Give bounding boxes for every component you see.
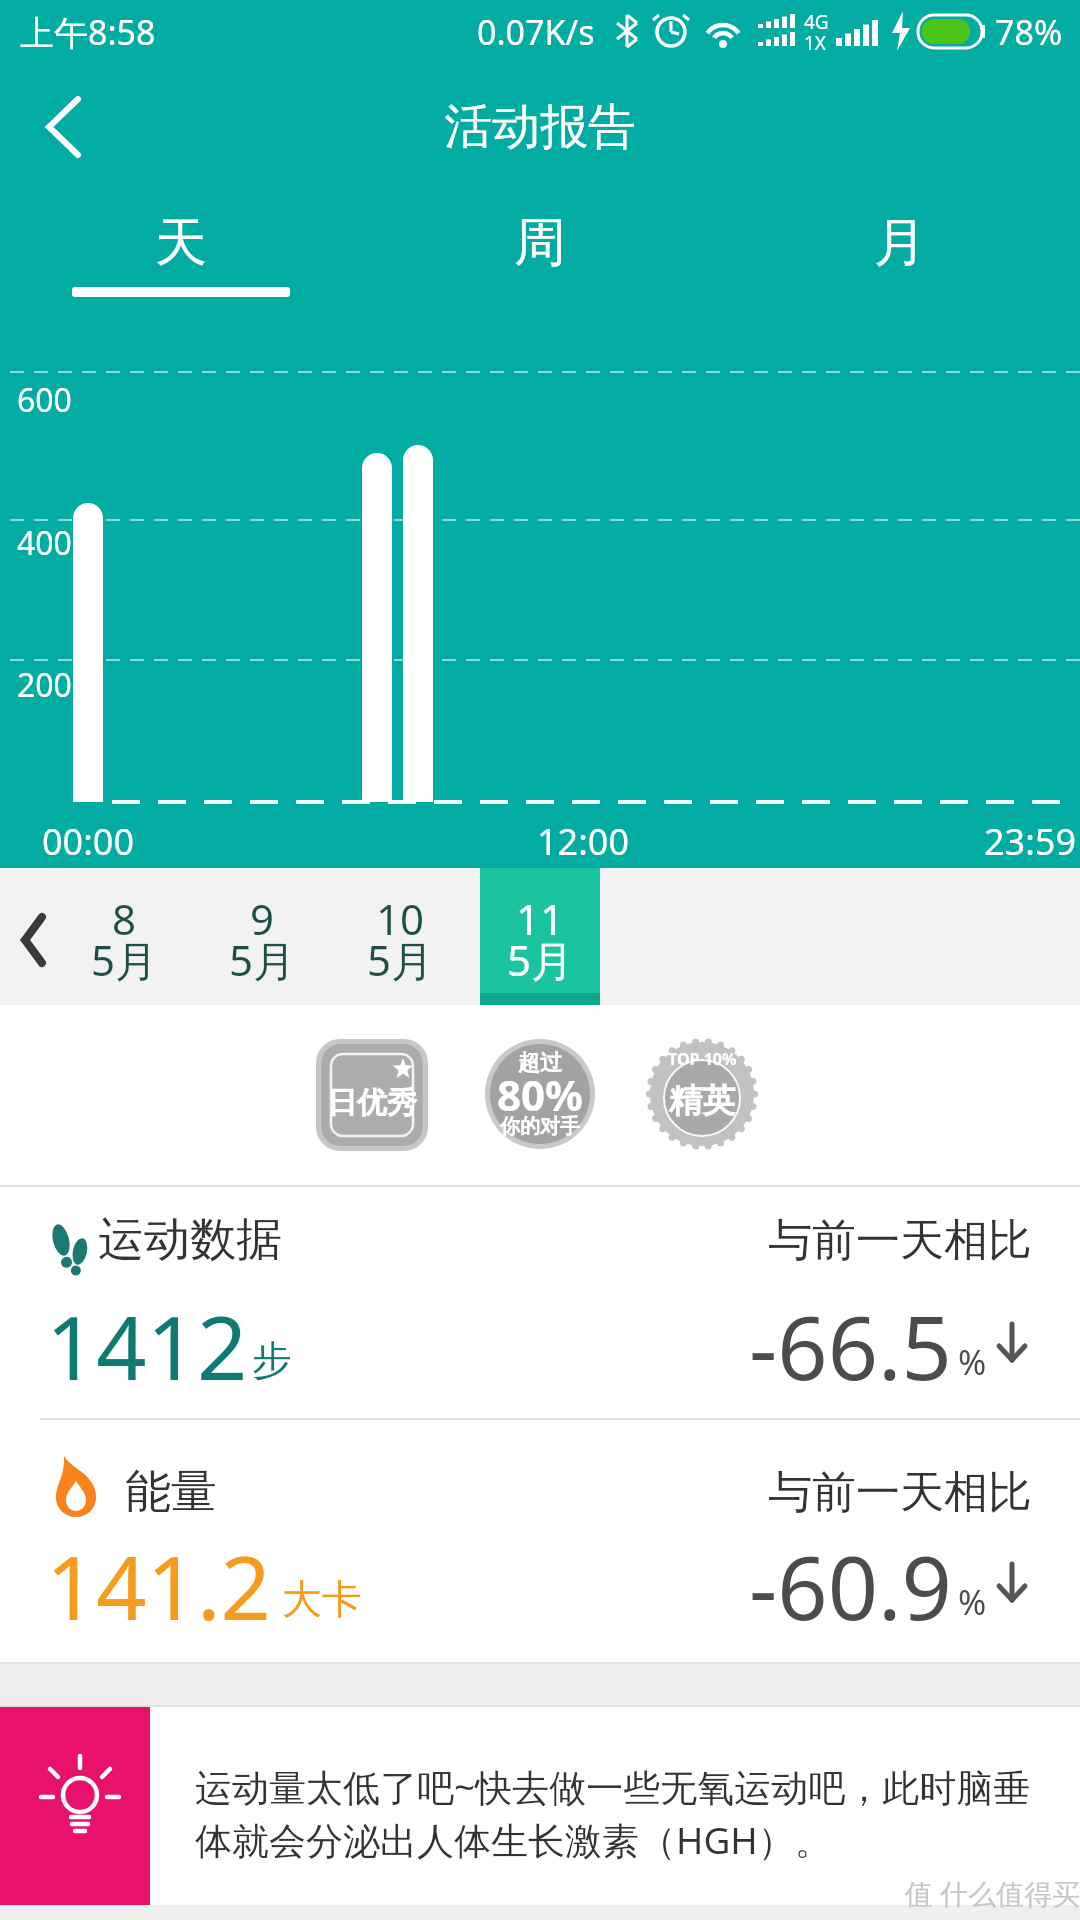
- staticText: 精英: [669, 1080, 735, 1122]
- button[interactable]: 10: [335, 848, 465, 988]
- staticText: 1X: [804, 30, 827, 56]
- staticText: 5月: [229, 931, 296, 988]
- staticText: 5月: [507, 931, 574, 988]
- staticText: %: [958, 1339, 987, 1385]
- staticText: -66.5: [749, 1286, 952, 1406]
- staticText: 1412: [46, 1286, 248, 1406]
- staticText: TOP 10%: [668, 1048, 737, 1070]
- staticText: 200: [17, 663, 72, 707]
- button[interactable]: 天: [71, 173, 291, 313]
- button[interactable]: 9: [197, 848, 327, 988]
- staticText: 与前一天相比: [768, 1465, 1032, 1520]
- staticText: 你的对手: [500, 1114, 580, 1139]
- staticText: 5月: [367, 931, 434, 988]
- staticText: 月: [874, 210, 926, 276]
- staticText: 日优秀: [327, 1084, 417, 1122]
- staticText: 步: [252, 1335, 292, 1385]
- staticText: 10: [376, 890, 425, 947]
- staticText: 值 什么值得买: [905, 1874, 1080, 1912]
- staticText: 00:00: [42, 817, 135, 866]
- button[interactable]: [0, 1421, 1080, 1661]
- staticText: 运动数据: [98, 1211, 282, 1269]
- button[interactable]: 周: [430, 173, 650, 313]
- staticText: 活动报告: [444, 97, 636, 157]
- button[interactable]: [480, 868, 600, 993]
- staticText: 78%: [995, 9, 1063, 55]
- staticText: 11: [516, 890, 565, 947]
- staticText: 5月: [91, 931, 158, 988]
- staticText: 上午8:58: [20, 9, 156, 55]
- staticText: 80%: [497, 1066, 583, 1123]
- staticText: 超过: [518, 1049, 562, 1077]
- staticText: 大卡: [282, 1574, 362, 1624]
- staticText: %: [958, 1579, 987, 1625]
- staticText: 4G: [804, 9, 829, 35]
- staticText: 运动量太低了吧~快去做一些无氧运动吧，此时脑垂: [195, 1761, 1031, 1812]
- button[interactable]: [30, 95, 100, 161]
- staticText: 8: [112, 890, 137, 947]
- staticText: 天: [155, 210, 207, 276]
- staticText: 400: [17, 521, 72, 565]
- staticText: 体就会分泌出人体生长激素（HGH）。: [195, 1814, 832, 1865]
- staticText: -60.9: [749, 1526, 952, 1646]
- button[interactable]: [0, 1707, 150, 1905]
- staticText: 能量: [125, 1463, 217, 1521]
- button[interactable]: 月: [790, 173, 1010, 313]
- staticText: 141.2: [46, 1526, 271, 1646]
- button[interactable]: [0, 1188, 1080, 1418]
- staticText: 12:00: [537, 817, 630, 866]
- staticText: 与前一天相比: [768, 1213, 1032, 1268]
- staticText: 0.07K/s: [477, 9, 595, 55]
- staticText: 周: [514, 210, 566, 276]
- staticText: 600: [17, 378, 72, 422]
- staticText: 9: [250, 890, 275, 947]
- staticText: 23:59: [984, 817, 1077, 866]
- button[interactable]: 8: [59, 848, 189, 988]
